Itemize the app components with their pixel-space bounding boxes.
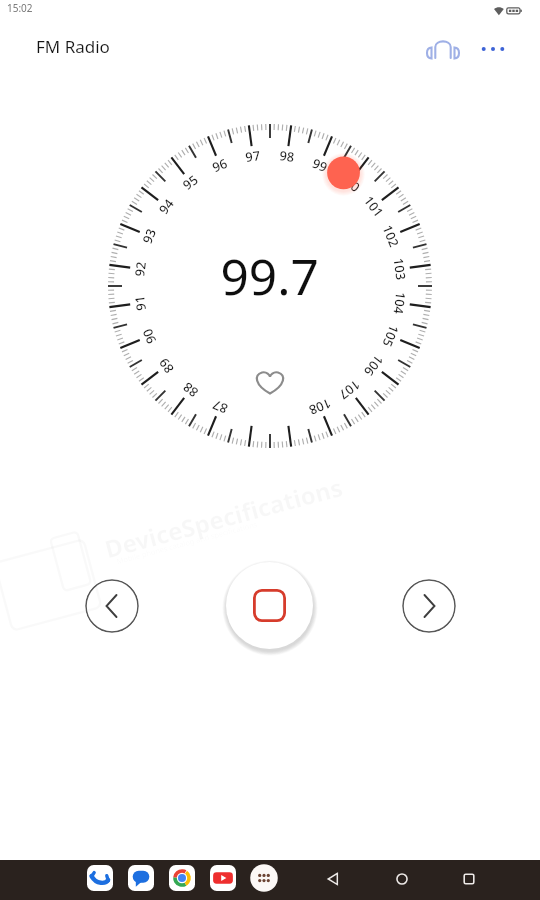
button[interactable]: Favorite <box>252 364 288 400</box>
button[interactable]: Back <box>316 862 350 896</box>
staticText: FM Radio <box>36 35 110 58</box>
button[interactable]: Headphones <box>420 26 466 72</box>
button[interactable]: Recents <box>452 862 486 896</box>
button[interactable]: More options <box>470 26 516 72</box>
button[interactable]: Next station <box>402 579 456 633</box>
staticText: 15:02 <box>7 1 33 15</box>
button[interactable]: Messages <box>120 861 161 895</box>
button[interactable]: Phone <box>79 861 120 895</box>
button[interactable]: Stop <box>226 562 313 649</box>
button[interactable]: Previous station <box>85 579 139 633</box>
button[interactable]: Frequency tuner, 99.7 MHz <box>108 124 432 448</box>
button[interactable]: Home <box>385 862 419 896</box>
button[interactable]: YouTube <box>202 861 243 895</box>
button[interactable]: Chrome <box>161 861 202 895</box>
button[interactable]: All apps <box>243 861 284 895</box>
